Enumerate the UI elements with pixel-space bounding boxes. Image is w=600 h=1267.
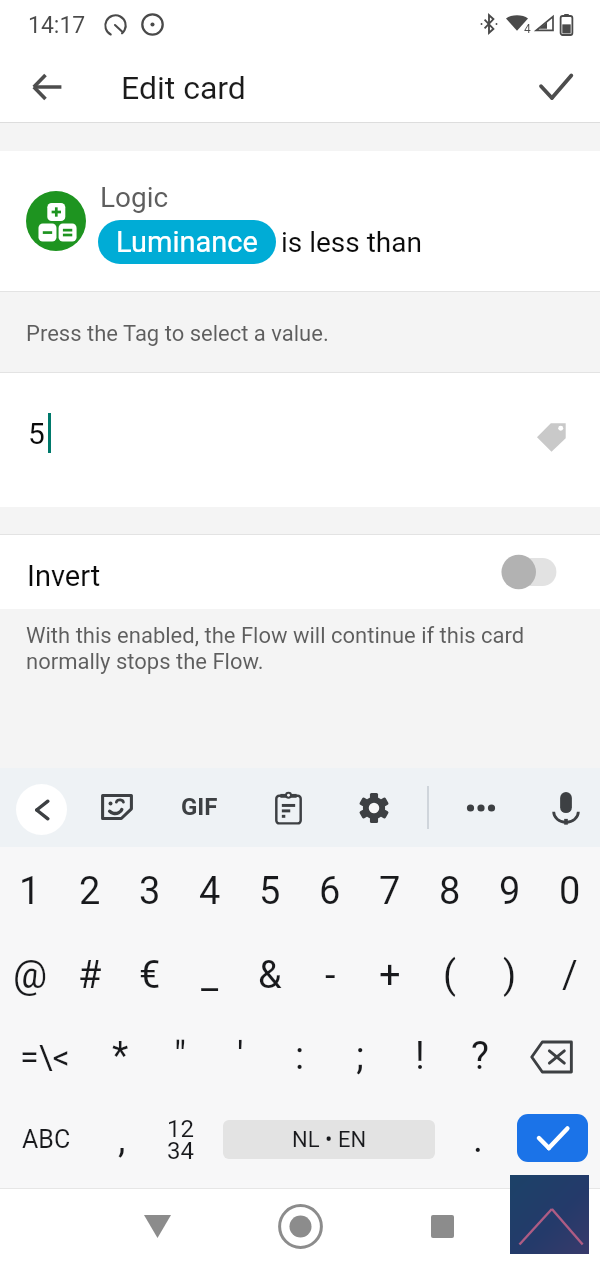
button[interactable]: Backspace (507, 1014, 597, 1100)
staticText: , (118, 1117, 126, 1162)
button[interactable]: Close tools (16, 784, 67, 835)
button[interactable]: 5 (240, 849, 300, 934)
staticText: 14:17 (28, 12, 86, 39)
button[interactable]: More options (460, 796, 502, 820)
button[interactable]: ABC (0, 1097, 93, 1182)
staticText: Luminance (116, 225, 258, 259)
button[interactable]: 1 (0, 849, 60, 934)
button[interactable]: 4 (180, 849, 240, 934)
staticText: 12 34 (167, 1115, 194, 1165)
button[interactable]: Stickers (99, 789, 135, 825)
button[interactable]: Back (122, 1191, 192, 1261)
button[interactable]: Clipboard (274, 792, 303, 824)
staticText: 4 (199, 869, 221, 914)
button[interactable]: ! (390, 1014, 450, 1099)
button[interactable]: Enter (506, 1097, 598, 1182)
staticText: 6 (319, 869, 341, 914)
staticText: ( (443, 953, 457, 998)
button[interactable] (0, 535, 600, 609)
button[interactable]: Save (527, 58, 585, 116)
button[interactable]: Luminance (98, 220, 276, 264)
button[interactable]: ? (450, 1014, 510, 1099)
staticText: ABC (22, 1125, 71, 1154)
staticText: * (112, 1034, 129, 1079)
staticText: / (562, 953, 578, 998)
staticText: - (325, 953, 336, 998)
button[interactable]: 12 34 (150, 1097, 210, 1182)
staticText: # (78, 953, 102, 998)
staticText: € (139, 953, 161, 998)
staticText: 7 (379, 869, 401, 914)
staticText: Logic (100, 181, 169, 214)
button[interactable]: € (120, 933, 180, 1018)
button[interactable] (0, 373, 600, 507)
staticText: 8 (439, 869, 461, 914)
button[interactable]: 9 (480, 849, 540, 934)
button[interactable]: * (90, 1014, 150, 1099)
button[interactable]: ' (210, 1014, 270, 1099)
button[interactable]: : (270, 1014, 330, 1099)
staticText: ' (237, 1034, 244, 1079)
button[interactable]: Settings (359, 793, 389, 823)
staticText: 2 (79, 869, 101, 914)
button[interactable] (0, 151, 600, 291)
button[interactable]: 3 (120, 849, 180, 934)
button[interactable]: ) (480, 933, 540, 1018)
button[interactable]: # (60, 933, 120, 1018)
button[interactable]: Navigate up (18, 58, 76, 116)
staticText: ! (415, 1034, 425, 1079)
button[interactable]: @ (0, 933, 60, 1018)
button[interactable]: NL • EN (210, 1097, 448, 1182)
staticText: ) (503, 953, 517, 998)
button[interactable]: - (300, 933, 360, 1018)
button[interactable]: =\< (0, 1014, 90, 1099)
staticText: 5 (28, 416, 45, 451)
button[interactable]: / (540, 933, 600, 1018)
button[interactable]: , (93, 1097, 150, 1182)
button[interactable]: ( (420, 933, 480, 1018)
staticText: Edit card (121, 69, 246, 107)
button[interactable]: ; (330, 1014, 390, 1099)
staticText: ? (471, 1034, 489, 1079)
staticText: @ (13, 953, 48, 998)
staticText: =\< (20, 1037, 70, 1077)
staticText: 5 (259, 869, 281, 914)
staticText: " (174, 1034, 187, 1079)
staticText: + (379, 953, 401, 998)
staticText: & (258, 953, 282, 998)
staticText: GIF (181, 793, 218, 821)
staticText: . (473, 1117, 484, 1162)
button[interactable]: 8 (420, 849, 480, 934)
staticText: NL • EN (292, 1127, 367, 1153)
button[interactable]: 6 (300, 849, 360, 934)
staticText: With this enabled, the Flow will continu… (26, 623, 525, 674)
staticText: _ (201, 953, 219, 998)
button[interactable]: Home (265, 1191, 335, 1261)
staticText: 0 (559, 869, 581, 914)
button[interactable]: & (240, 933, 300, 1018)
button[interactable]: " (150, 1014, 210, 1099)
button[interactable]: 7 (360, 849, 420, 934)
button[interactable]: Recent apps (407, 1191, 477, 1261)
button[interactable]: 0 (540, 849, 600, 934)
staticText: Press the Tag to select a value. (26, 321, 329, 347)
staticText: 3 (139, 869, 161, 914)
staticText: Invert (27, 559, 101, 593)
staticText: 4 (524, 22, 531, 36)
staticText: ; (356, 1034, 365, 1079)
button[interactable]: _ (180, 933, 240, 1018)
staticText: is less than (281, 226, 422, 259)
staticText: 9 (499, 869, 521, 914)
button[interactable]: . (448, 1097, 508, 1182)
button[interactable]: GIF (181, 791, 218, 823)
button[interactable]: + (360, 933, 420, 1018)
button[interactable]: 2 (60, 849, 120, 934)
button[interactable]: Voice input (552, 791, 580, 825)
staticText: 1 (19, 869, 41, 914)
staticText: : (295, 1034, 305, 1079)
